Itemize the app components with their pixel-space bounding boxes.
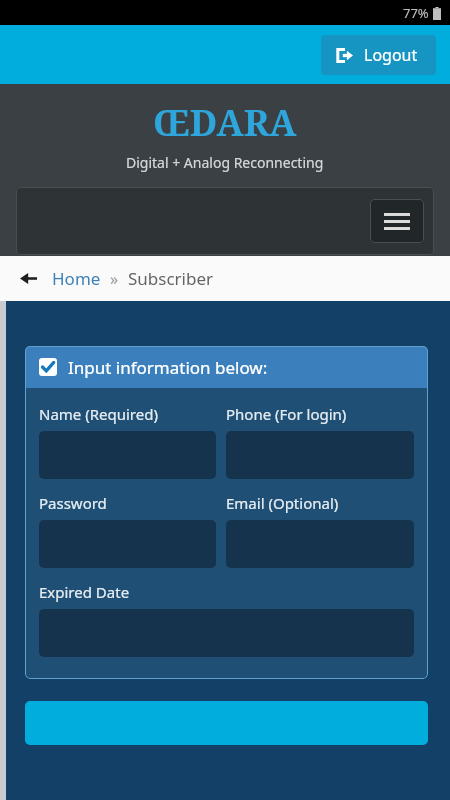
button[interactable]: Home bbox=[52, 267, 101, 290]
button[interactable]: Logout bbox=[321, 35, 436, 75]
staticText: Email (Optional) bbox=[226, 493, 339, 513]
staticText: Expired Date bbox=[39, 582, 130, 602]
button[interactable]: Open navigation menu bbox=[370, 199, 424, 243]
staticText: Password bbox=[39, 493, 107, 513]
staticText: 77% bbox=[403, 4, 429, 22]
staticText: Phone (For login) bbox=[226, 404, 347, 424]
button[interactable]: Back bbox=[16, 267, 41, 290]
button[interactable]: Input information below: bbox=[25, 346, 428, 388]
staticText: Name (Required) bbox=[39, 404, 158, 424]
button[interactable]: Submit bbox=[25, 701, 428, 745]
staticText: ŒDARA bbox=[153, 98, 297, 147]
staticText: Input information below: bbox=[68, 356, 268, 379]
staticText: » bbox=[110, 268, 119, 290]
staticText: Subscriber bbox=[128, 267, 214, 290]
staticText: Digital + Analog Reconnecting bbox=[126, 153, 324, 172]
staticText: Logout bbox=[364, 44, 418, 66]
